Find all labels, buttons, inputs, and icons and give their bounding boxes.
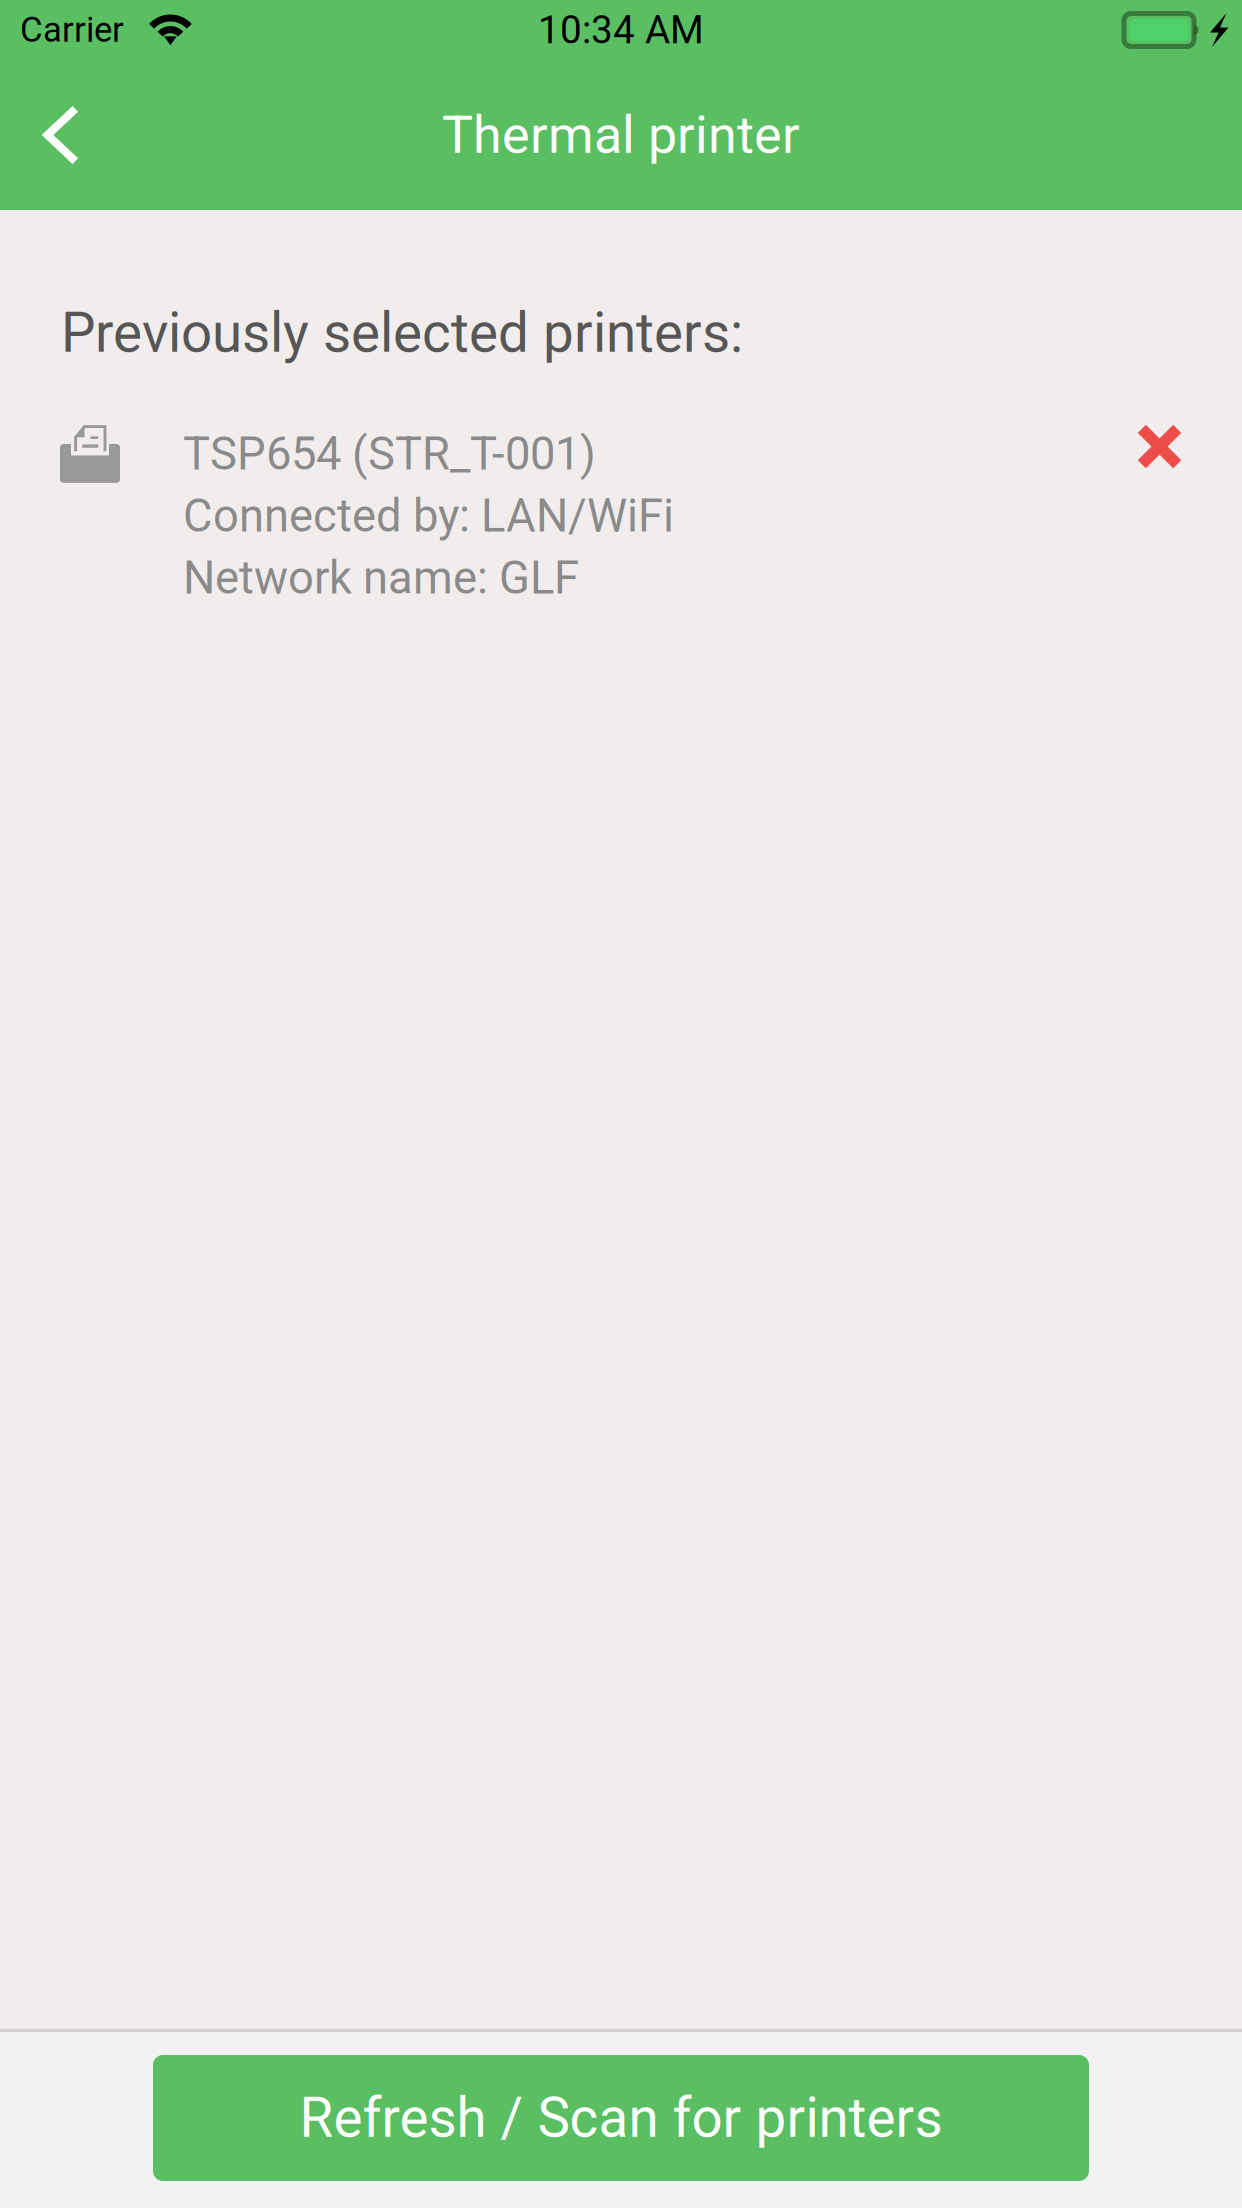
button[interactable]: Refresh / Scan for printers [0,2032,1242,2208]
button[interactable]: TSP654 (STR_T-001) [0,423,704,609]
staticText: 10:34 AM [538,7,704,53]
button[interactable]: Back [0,60,108,210]
staticText: Connected by: LAN/WiFi [183,489,674,543]
staticText: Refresh / Scan for printers [299,2086,942,2150]
staticText: TSP654 (STR_T-001) [183,427,596,481]
staticText: Network name: GLF [183,551,579,605]
staticText: Carrier [20,10,124,50]
staticText: Thermal printer [442,104,800,165]
button[interactable]: Remove printer [1136,423,1242,470]
staticText: Previously selected printers: [61,301,743,365]
